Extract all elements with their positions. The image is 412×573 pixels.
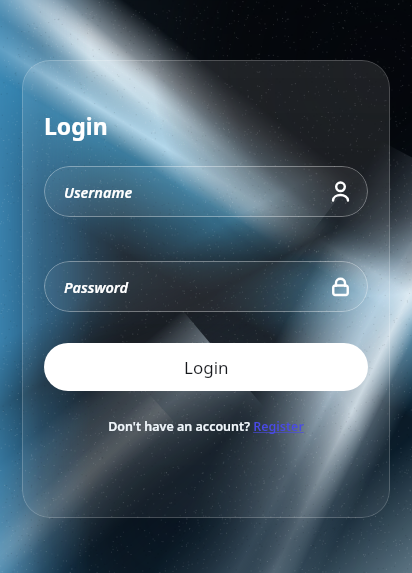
- button[interactable]: Username: [44, 166, 368, 217]
- button[interactable]: Don't have an account? Register: [104, 416, 308, 437]
- button[interactable]: Login: [44, 343, 368, 391]
- staticText: Don't have an account? Register: [108, 418, 304, 435]
- other: Username: [330, 181, 351, 202]
- staticText: Login: [44, 110, 108, 141]
- staticText: Login: [184, 356, 229, 379]
- staticText: Password: [64, 277, 129, 297]
- button[interactable]: Password: [44, 261, 368, 312]
- staticText: Username: [64, 182, 133, 202]
- other: Password: [330, 276, 351, 297]
